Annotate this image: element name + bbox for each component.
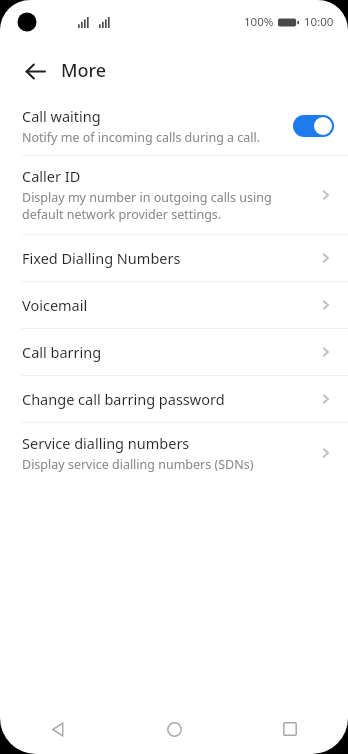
staticText: Call barring — [22, 342, 102, 362]
button[interactable]: Home — [116, 704, 232, 754]
staticText: 100% — [244, 14, 274, 30]
button[interactable]: Caller ID — [0, 156, 348, 234]
staticText: Notify me of incoming calls during a cal… — [22, 129, 261, 146]
staticText: Caller ID — [22, 166, 81, 186]
button[interactable]: Call waiting toggle — [293, 115, 334, 137]
button[interactable]: Voicemail — [0, 282, 348, 328]
staticText: Call waiting — [22, 106, 101, 126]
button[interactable]: Fixed Dialling Numbers — [0, 235, 348, 281]
staticText: Display my number in outgoing calls usin… — [22, 189, 272, 223]
staticText: Voicemail — [22, 295, 88, 315]
staticText: More — [61, 58, 107, 83]
staticText: Fixed Dialling Numbers — [22, 248, 181, 268]
staticText: Service dialling numbers — [22, 433, 190, 453]
staticText: 10:00 — [304, 14, 334, 30]
button[interactable]: Call barring — [0, 329, 348, 375]
staticText: Display service dialling numbers (SDNs) — [22, 456, 254, 473]
button[interactable]: Back — [0, 704, 116, 754]
staticText: Change call barring password — [22, 389, 225, 409]
button[interactable]: Call waiting — [0, 97, 348, 155]
button[interactable]: Service dialling numbers — [0, 423, 348, 484]
button[interactable]: Change call barring password — [0, 376, 348, 422]
button[interactable]: Back — [15, 51, 55, 91]
button[interactable]: Recent apps — [232, 704, 348, 754]
